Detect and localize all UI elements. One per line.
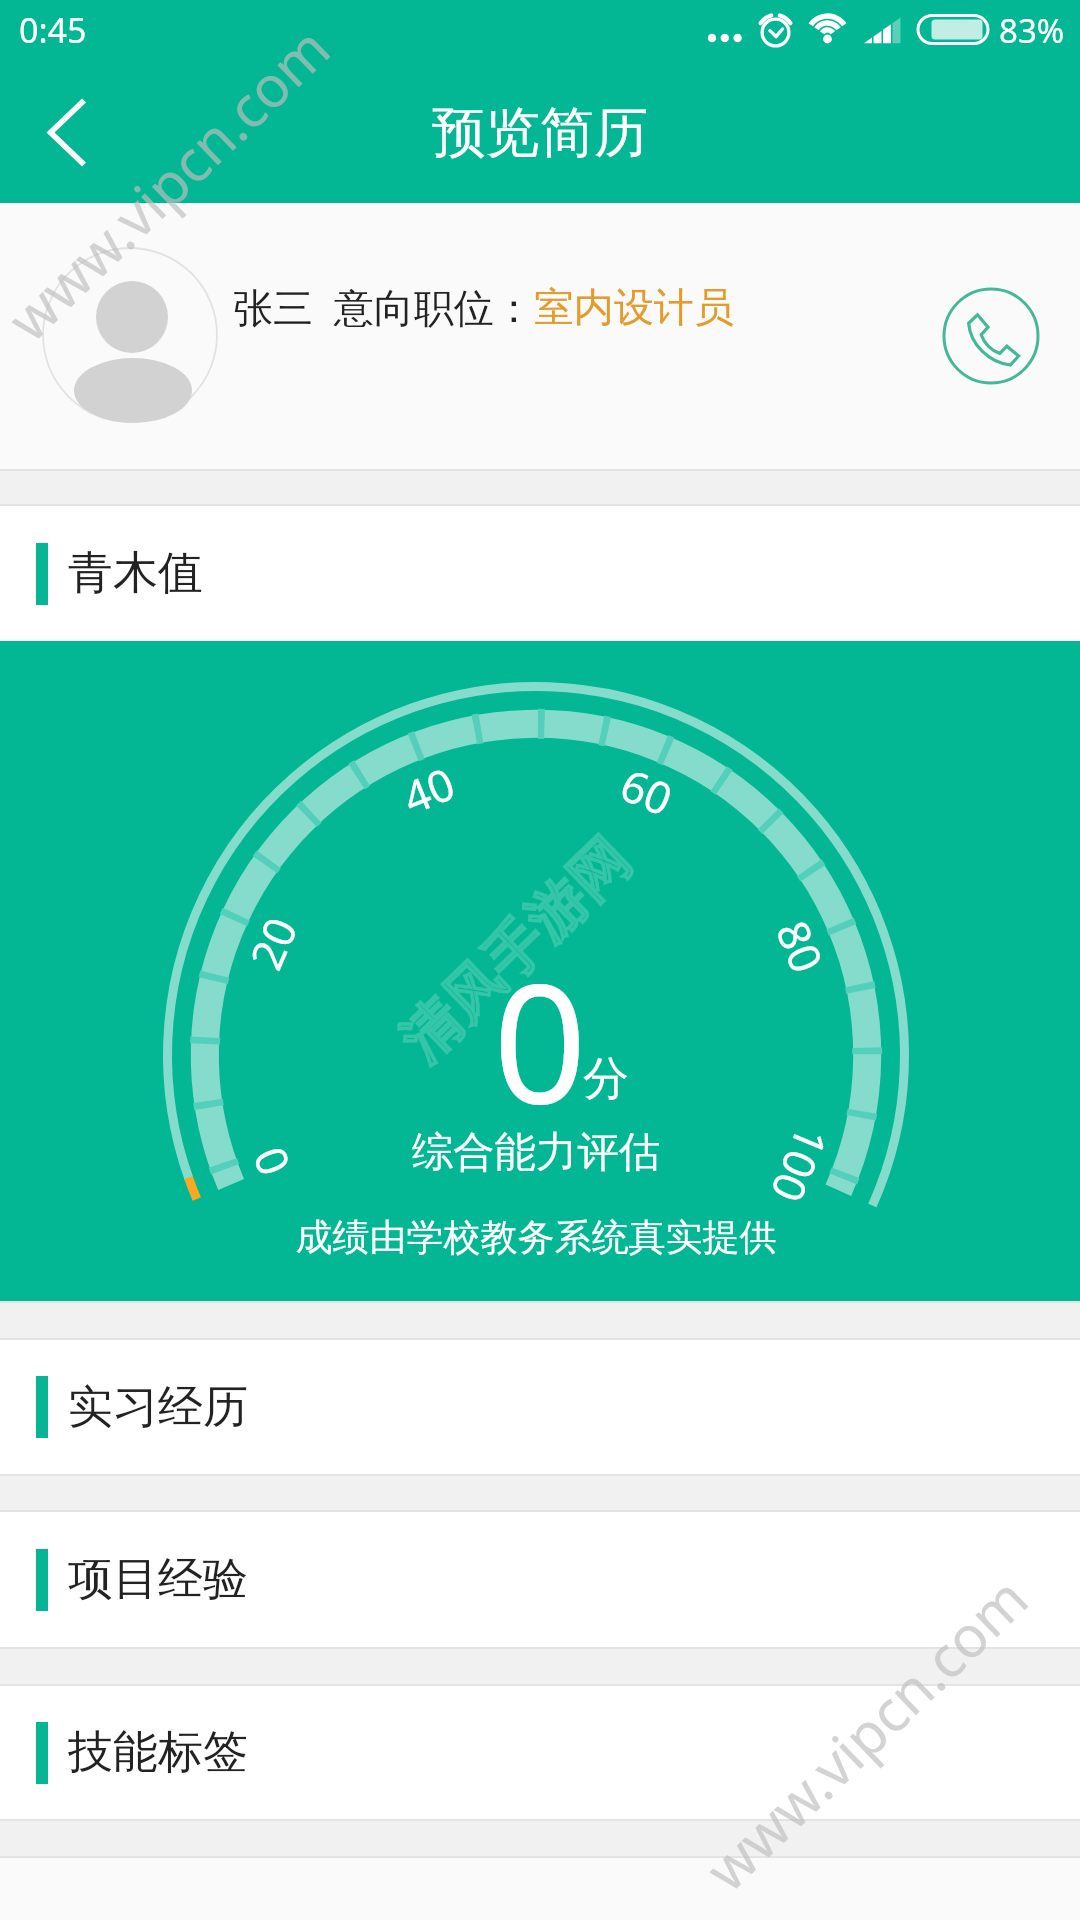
staticText: 张三 意向职位： — [233, 279, 534, 334]
staticText: 实习经历 — [68, 1379, 248, 1436]
button[interactable]: 青木值 — [0, 506, 1080, 641]
staticText: 项目经验 — [68, 1551, 248, 1608]
staticText: 0:45 — [19, 7, 87, 53]
staticText: 83% — [999, 8, 1065, 53]
button[interactable]: 实习经历 — [0, 1340, 1080, 1474]
button[interactable]: 张三 意向职位： — [0, 203, 1080, 469]
staticText: 预览简历 — [432, 99, 648, 167]
button[interactable]: Call — [942, 287, 1040, 385]
button[interactable]: Back — [0, 62, 125, 203]
button[interactable]: 项目经验 — [0, 1512, 1080, 1647]
staticText: 室内设计员 — [534, 282, 734, 332]
button[interactable]: 技能标签 — [0, 1686, 1080, 1819]
staticText: 技能标签 — [68, 1724, 248, 1781]
staticText: 青木值 — [68, 545, 203, 602]
